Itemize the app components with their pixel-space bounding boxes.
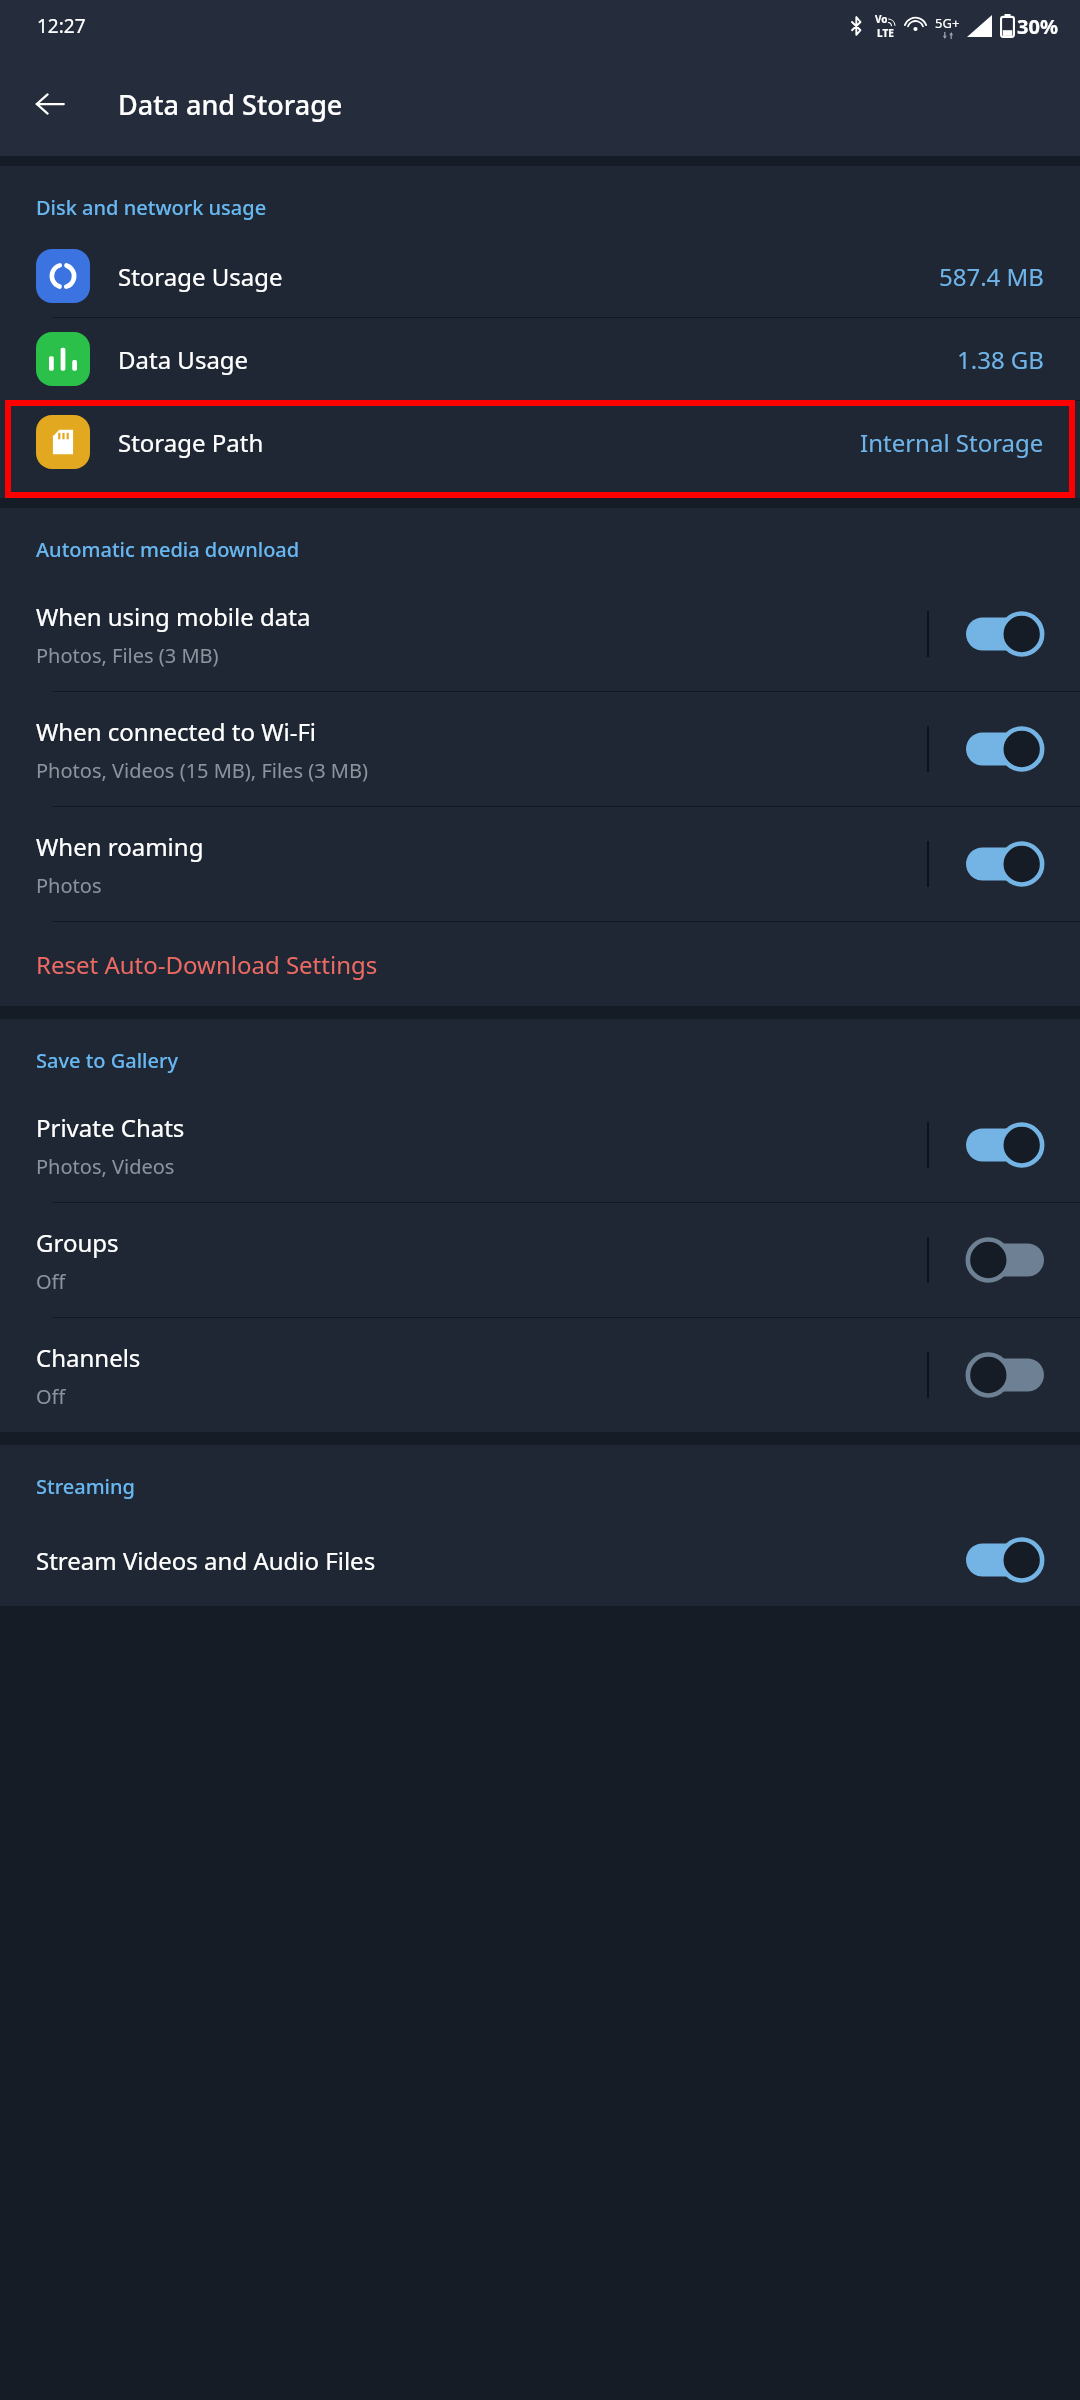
- button[interactable]: Stream Videos and Audio Files: [0, 1514, 1080, 1606]
- button[interactable]: On: [966, 1122, 1044, 1168]
- staticText: Off: [36, 1383, 66, 1410]
- staticText: 30%: [1017, 13, 1058, 40]
- staticText: Streaming: [36, 1473, 135, 1500]
- staticText: Photos, Videos: [36, 1153, 175, 1180]
- staticText: Reset Auto-Download Settings: [36, 948, 378, 981]
- staticText: Storage Path: [118, 426, 264, 459]
- staticText: Photos: [36, 872, 102, 899]
- button[interactable]: Data Usage: [0, 318, 1080, 400]
- button[interactable]: When using mobile data: [0, 577, 1080, 691]
- staticText: Photos, Videos (15 MB), Files (3 MB): [36, 757, 368, 784]
- button[interactable]: On: [966, 611, 1044, 657]
- staticText: Channels: [36, 1341, 141, 1374]
- staticText: Data and Storage: [118, 86, 343, 123]
- staticText: Off: [36, 1268, 66, 1295]
- button[interactable]: On: [966, 1537, 1044, 1583]
- staticText: Disk and network usage: [36, 194, 267, 221]
- button[interactable]: Channels: [0, 1318, 1080, 1432]
- button[interactable]: Back: [22, 76, 78, 132]
- staticText: When using mobile data: [36, 600, 311, 633]
- staticText: Vo: [875, 12, 888, 26]
- staticText: Save to Gallery: [36, 1047, 179, 1074]
- button[interactable]: Private Chats: [0, 1088, 1080, 1202]
- button[interactable]: Groups: [0, 1203, 1080, 1317]
- staticText: LTE: [877, 26, 894, 40]
- staticText: Storage Usage: [118, 260, 283, 293]
- staticText: Internal Storage: [860, 426, 1044, 459]
- staticText: Automatic media download: [36, 536, 300, 563]
- button[interactable]: Storage Usage: [0, 235, 1080, 317]
- staticText: Photos, Files (3 MB): [36, 642, 219, 669]
- staticText: When connected to Wi-Fi: [36, 715, 317, 748]
- button[interactable]: On: [966, 841, 1044, 887]
- button[interactable]: Off: [966, 1237, 1044, 1283]
- button[interactable]: Reset Auto-Download Settings: [0, 922, 1080, 1006]
- staticText: Data Usage: [118, 343, 249, 376]
- button[interactable]: Off: [966, 1352, 1044, 1398]
- staticText: When roaming: [36, 830, 204, 863]
- staticText: Stream Videos and Audio Files: [36, 1544, 376, 1577]
- staticText: Private Chats: [36, 1111, 185, 1144]
- button[interactable]: When roaming: [0, 807, 1080, 921]
- staticText: 587.4 MB: [939, 260, 1044, 293]
- staticText: 5G+: [935, 14, 960, 32]
- staticText: Groups: [36, 1226, 119, 1259]
- staticText: 1.38 GB: [957, 343, 1044, 376]
- button[interactable]: When connected to Wi-Fi: [0, 692, 1080, 806]
- button[interactable]: Storage Path: [0, 401, 1080, 483]
- button[interactable]: On: [966, 726, 1044, 772]
- staticText: 12:27: [37, 13, 86, 39]
